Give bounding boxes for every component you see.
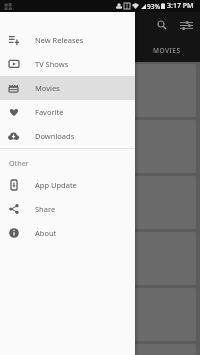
staticText: About xyxy=(35,228,57,238)
staticText: MOVIES xyxy=(153,46,181,55)
button[interactable] xyxy=(4,288,196,341)
staticText: TV Shows xyxy=(35,59,69,69)
button[interactable] xyxy=(4,344,196,355)
staticText: Share xyxy=(35,204,56,214)
staticText: 3:17 PM xyxy=(167,1,194,11)
staticText: Favorite xyxy=(35,107,64,117)
staticText: 93% xyxy=(147,2,160,11)
staticText: 93% xyxy=(147,2,160,11)
button[interactable]: Favorite xyxy=(0,100,135,124)
button[interactable]: Downloads xyxy=(0,124,135,148)
button[interactable]: TV SHOWS xyxy=(66,38,133,62)
button[interactable]: TRENDING xyxy=(0,38,66,62)
staticText: Other xyxy=(9,158,29,168)
button[interactable]: About xyxy=(0,221,135,245)
button[interactable] xyxy=(4,64,196,117)
staticText: New Releases xyxy=(35,35,84,45)
button[interactable]: App Update xyxy=(0,173,135,197)
staticText: Downloads xyxy=(35,131,75,141)
button[interactable] xyxy=(4,176,196,229)
staticText: 3:17 PM xyxy=(167,1,194,11)
button[interactable]: MOVIES xyxy=(133,38,200,62)
staticText: Movies xyxy=(35,83,60,93)
button[interactable]: New Releases xyxy=(0,28,135,52)
button[interactable] xyxy=(4,232,196,285)
button[interactable]: Share xyxy=(0,197,135,221)
staticText: App Update xyxy=(35,180,77,190)
button[interactable]: Search xyxy=(153,16,171,34)
button[interactable] xyxy=(4,120,196,173)
button[interactable]: Filter xyxy=(177,16,195,34)
button[interactable]: TV Shows xyxy=(0,52,135,76)
button[interactable]: Movies xyxy=(0,76,135,100)
